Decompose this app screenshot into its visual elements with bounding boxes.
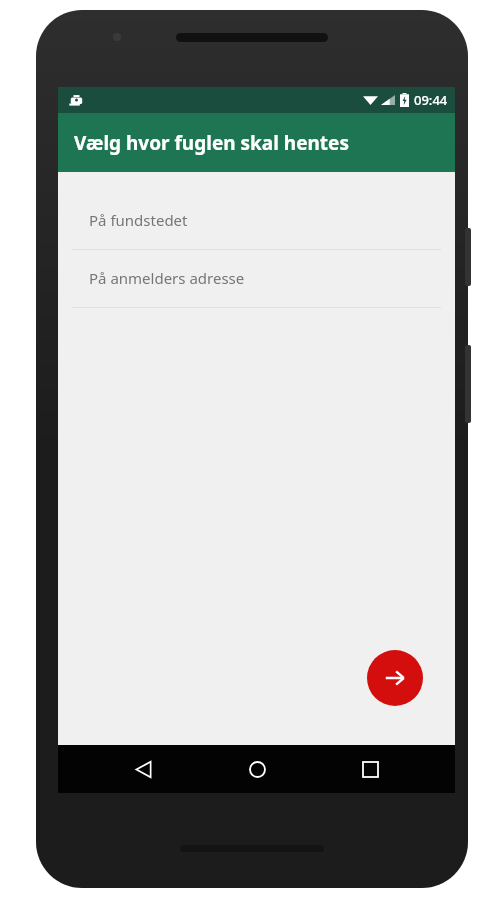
staticText: 09:44	[414, 91, 448, 109]
button[interactable]: Næste	[367, 650, 423, 706]
button[interactable]: På fundstedet	[58, 172, 455, 249]
staticText: Vælg hvor fuglen skal hentes	[74, 130, 349, 156]
button[interactable]: Seneste apps	[342, 745, 398, 793]
button[interactable]: Tilbage	[115, 745, 171, 793]
button[interactable]: Hjem	[229, 745, 285, 793]
staticText: På fundstedet	[89, 210, 188, 230]
staticText: På anmelders adresse	[89, 268, 245, 288]
button[interactable]: På anmelders adresse	[58, 250, 455, 307]
